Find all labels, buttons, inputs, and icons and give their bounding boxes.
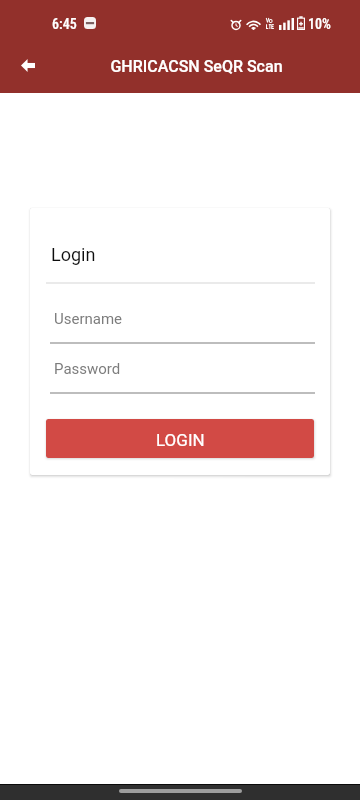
staticText: LOGIN xyxy=(156,430,205,450)
staticText: Username xyxy=(54,310,123,328)
button[interactable]: LOGIN xyxy=(46,419,314,458)
button[interactable]: Username xyxy=(46,304,314,348)
staticText: Login xyxy=(51,244,96,265)
button[interactable]: Navigate up xyxy=(8,45,48,85)
staticText: Password xyxy=(54,360,121,378)
button[interactable]: Password xyxy=(46,354,314,398)
staticText: GHRICACSN SeQR Scan xyxy=(110,57,283,76)
staticText: 6:45 xyxy=(52,16,77,32)
staticText: 10% xyxy=(308,16,331,32)
